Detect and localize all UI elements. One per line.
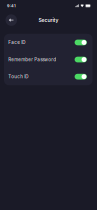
staticText: 9:41	[7, 3, 16, 8]
staticText: Touch ID	[8, 74, 28, 79]
staticText: Face ID	[8, 40, 25, 45]
staticText: Security	[38, 17, 58, 23]
button[interactable]: Touch ID	[4, 68, 92, 85]
button[interactable]: Face ID	[4, 34, 92, 51]
staticText: Remember Password	[8, 57, 56, 62]
button[interactable]: Remember Password	[4, 51, 92, 68]
button[interactable]: Back	[5, 14, 17, 26]
